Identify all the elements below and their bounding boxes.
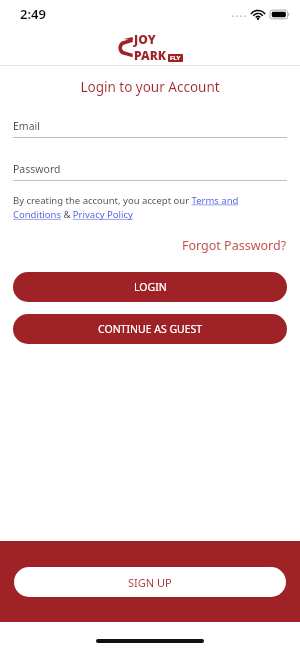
staticText: LOGIN xyxy=(134,280,167,294)
staticText: 2:49 xyxy=(20,5,46,23)
staticText: Login to your Account xyxy=(0,78,300,96)
button[interactable]: LOGIN xyxy=(13,272,287,302)
staticText: FLY xyxy=(170,54,181,62)
button[interactable]: CONTINUE AS GUEST xyxy=(13,314,287,344)
button[interactable]: Password xyxy=(13,162,287,181)
button[interactable]: Forgot Password? xyxy=(169,235,300,256)
staticText: Password xyxy=(13,162,61,176)
button[interactable]: Email xyxy=(13,119,287,138)
staticText: JOY xyxy=(134,31,156,47)
staticText: PARK xyxy=(134,47,167,63)
staticText: Email xyxy=(13,119,40,133)
button[interactable]: SIGN UP xyxy=(14,567,286,597)
staticText: Forgot Password? xyxy=(182,237,287,254)
staticText: CONTINUE AS GUEST xyxy=(98,322,203,336)
other: Joy Park Fly logo xyxy=(117,31,183,63)
staticText: By creating the account, you accept our … xyxy=(13,194,287,221)
staticText: SIGN UP xyxy=(128,575,172,590)
